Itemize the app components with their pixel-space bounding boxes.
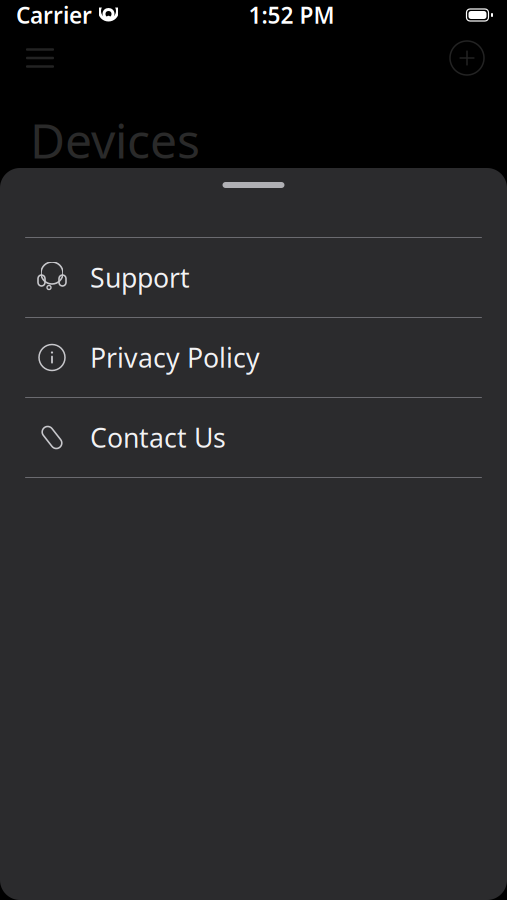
button[interactable]: Add xyxy=(441,34,493,82)
button[interactable]: Contact Us xyxy=(0,398,507,477)
staticText: Privacy Policy xyxy=(90,340,260,375)
button[interactable]: Privacy Policy xyxy=(0,318,507,397)
staticText: Devices xyxy=(30,108,200,172)
button[interactable]: Support xyxy=(0,238,507,317)
button[interactable]: Menu xyxy=(12,34,68,82)
staticText: Carrier xyxy=(16,0,92,30)
staticText: Contact Us xyxy=(90,420,226,455)
staticText: Support xyxy=(90,260,190,295)
staticText: 1:52 PM xyxy=(248,0,334,30)
